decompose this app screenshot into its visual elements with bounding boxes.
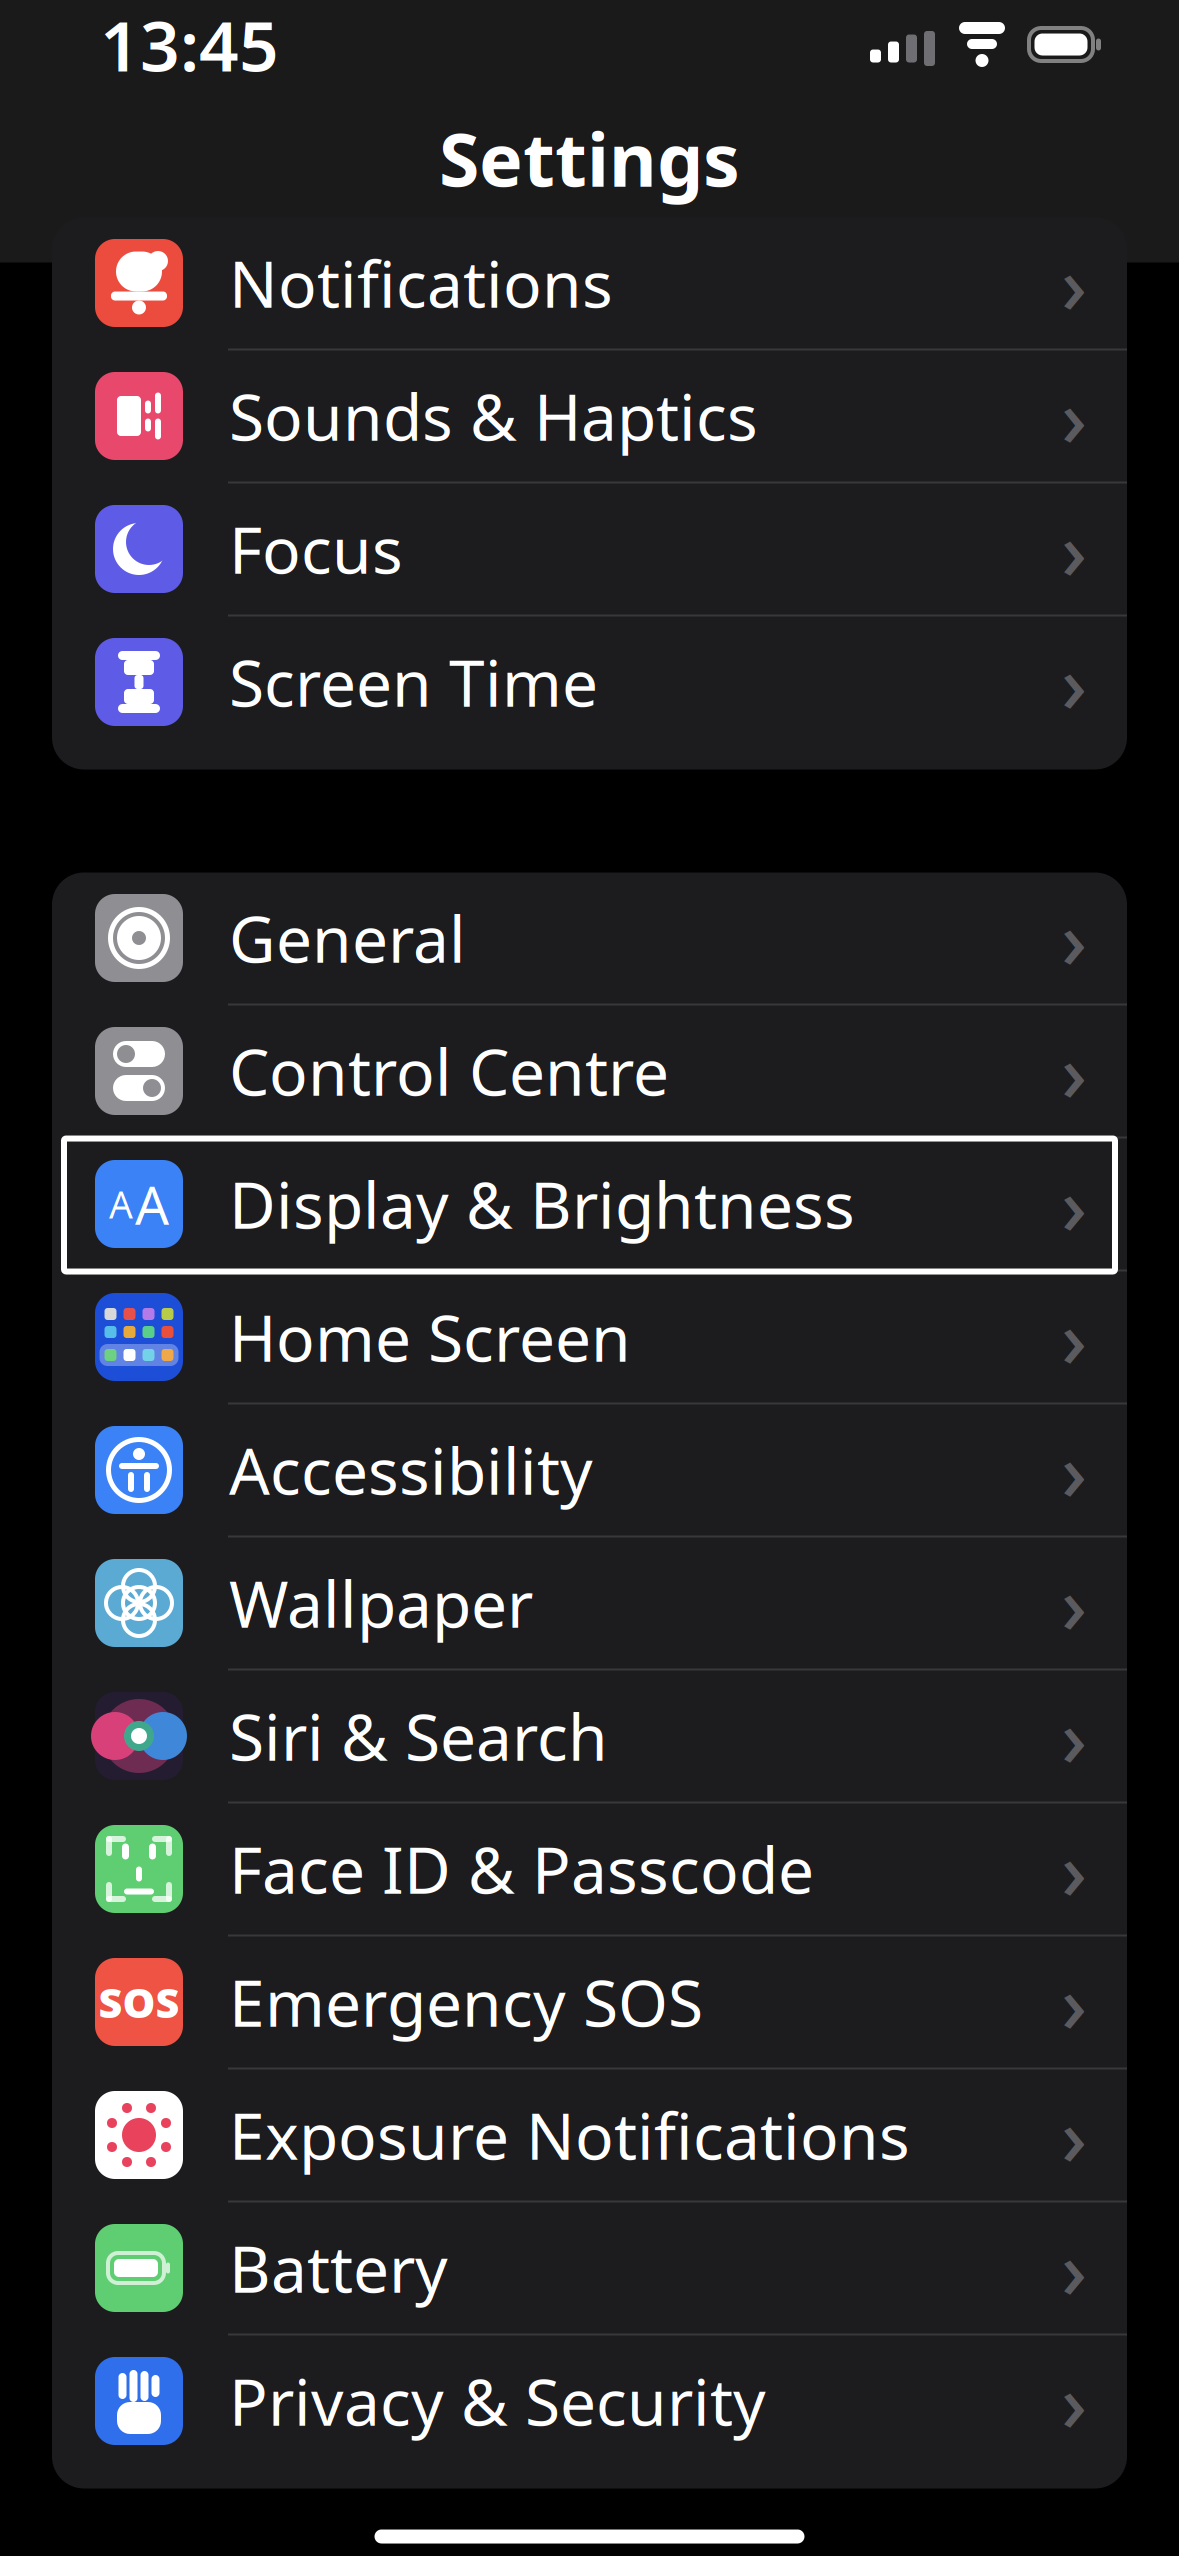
staticText: Accessibility <box>229 1427 593 1512</box>
button[interactable]: Privacy & Security <box>52 2335 1127 2466</box>
staticText: General <box>229 895 466 980</box>
staticText: Notifications <box>229 240 613 325</box>
button[interactable]: Screen Time <box>52 616 1127 747</box>
staticText: › <box>1061 230 1087 336</box>
staticText: › <box>1061 496 1087 602</box>
staticText: Settings <box>439 109 740 207</box>
staticText: › <box>1061 885 1087 991</box>
staticText: › <box>1061 1550 1087 1656</box>
staticText: › <box>1061 1151 1087 1257</box>
staticText: Siri & Search <box>229 1693 608 1778</box>
staticText: › <box>1061 1683 1087 1789</box>
staticText: A <box>135 1169 169 1239</box>
button[interactable]: Home Screen <box>52 1271 1127 1404</box>
button[interactable]: Siri & Search <box>52 1670 1127 1803</box>
staticText: › <box>1061 1816 1087 1922</box>
staticText: Sounds & Haptics <box>229 373 758 458</box>
staticText: › <box>1061 2348 1087 2454</box>
button[interactable]: Battery <box>52 2202 1127 2335</box>
staticText: Control Centre <box>229 1028 669 1113</box>
button[interactable]: A <box>52 1138 1127 1271</box>
staticText: › <box>1061 2082 1087 2188</box>
button[interactable]: SOS <box>52 1936 1127 2069</box>
staticText: › <box>1061 629 1087 735</box>
staticText: Emergency SOS <box>229 1959 703 2044</box>
staticText: Face ID & Passcode <box>229 1826 814 1911</box>
button[interactable]: Exposure Notifications <box>52 2069 1127 2202</box>
staticText: › <box>1061 1284 1087 1390</box>
button[interactable]: Control Centre <box>52 1005 1127 1138</box>
staticText: Screen Time <box>229 639 598 724</box>
button[interactable]: Face ID & Passcode <box>52 1803 1127 1936</box>
staticText: Wallpaper <box>229 1560 533 1645</box>
button[interactable]: Sounds & Haptics <box>52 350 1127 483</box>
button[interactable]: Notifications <box>52 217 1127 350</box>
staticText: › <box>1061 2215 1087 2321</box>
staticText: Home Screen <box>229 1294 631 1379</box>
button[interactable]: Focus <box>52 483 1127 616</box>
staticText: Display & Brightness <box>229 1161 855 1246</box>
staticText: › <box>1061 1949 1087 2055</box>
staticText: Exposure Notifications <box>229 2092 910 2177</box>
staticText: › <box>1061 1018 1087 1124</box>
staticText: Privacy & Security <box>229 2358 766 2443</box>
staticText: A <box>109 1179 133 1229</box>
button[interactable]: General <box>52 872 1127 1005</box>
staticText: SOS <box>98 1975 179 2029</box>
staticText: › <box>1061 1417 1087 1523</box>
staticText: 13:45 <box>100 0 279 91</box>
staticText: Focus <box>229 506 403 591</box>
button[interactable]: Wallpaper <box>52 1537 1127 1670</box>
button[interactable]: Accessibility <box>52 1404 1127 1537</box>
staticText: Battery <box>229 2225 448 2310</box>
staticText: › <box>1061 363 1087 469</box>
